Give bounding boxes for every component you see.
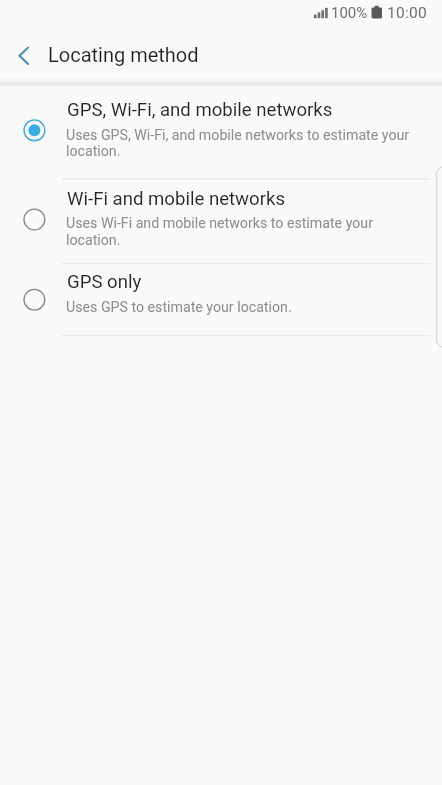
staticText: 100% <box>331 4 368 22</box>
staticText: GPS, Wi-Fi, and mobile networks <box>67 99 333 121</box>
staticText: Uses Wi-Fi and mobile networks to estima… <box>66 215 373 232</box>
staticText: 10:00 <box>387 4 428 22</box>
button[interactable] <box>0 87 442 178</box>
button[interactable] <box>6 38 42 74</box>
button[interactable] <box>0 263 442 335</box>
button[interactable] <box>0 178 442 263</box>
staticText: location. <box>66 232 121 249</box>
staticText: location. <box>66 143 121 160</box>
staticText: GPS only <box>67 271 142 293</box>
staticText: Uses GPS, Wi-Fi, and mobile networks to … <box>66 127 410 144</box>
staticText: Uses GPS to estimate your location. <box>66 299 292 316</box>
staticText: Wi-Fi and mobile networks <box>67 188 286 210</box>
staticText: Locating method <box>48 43 199 66</box>
